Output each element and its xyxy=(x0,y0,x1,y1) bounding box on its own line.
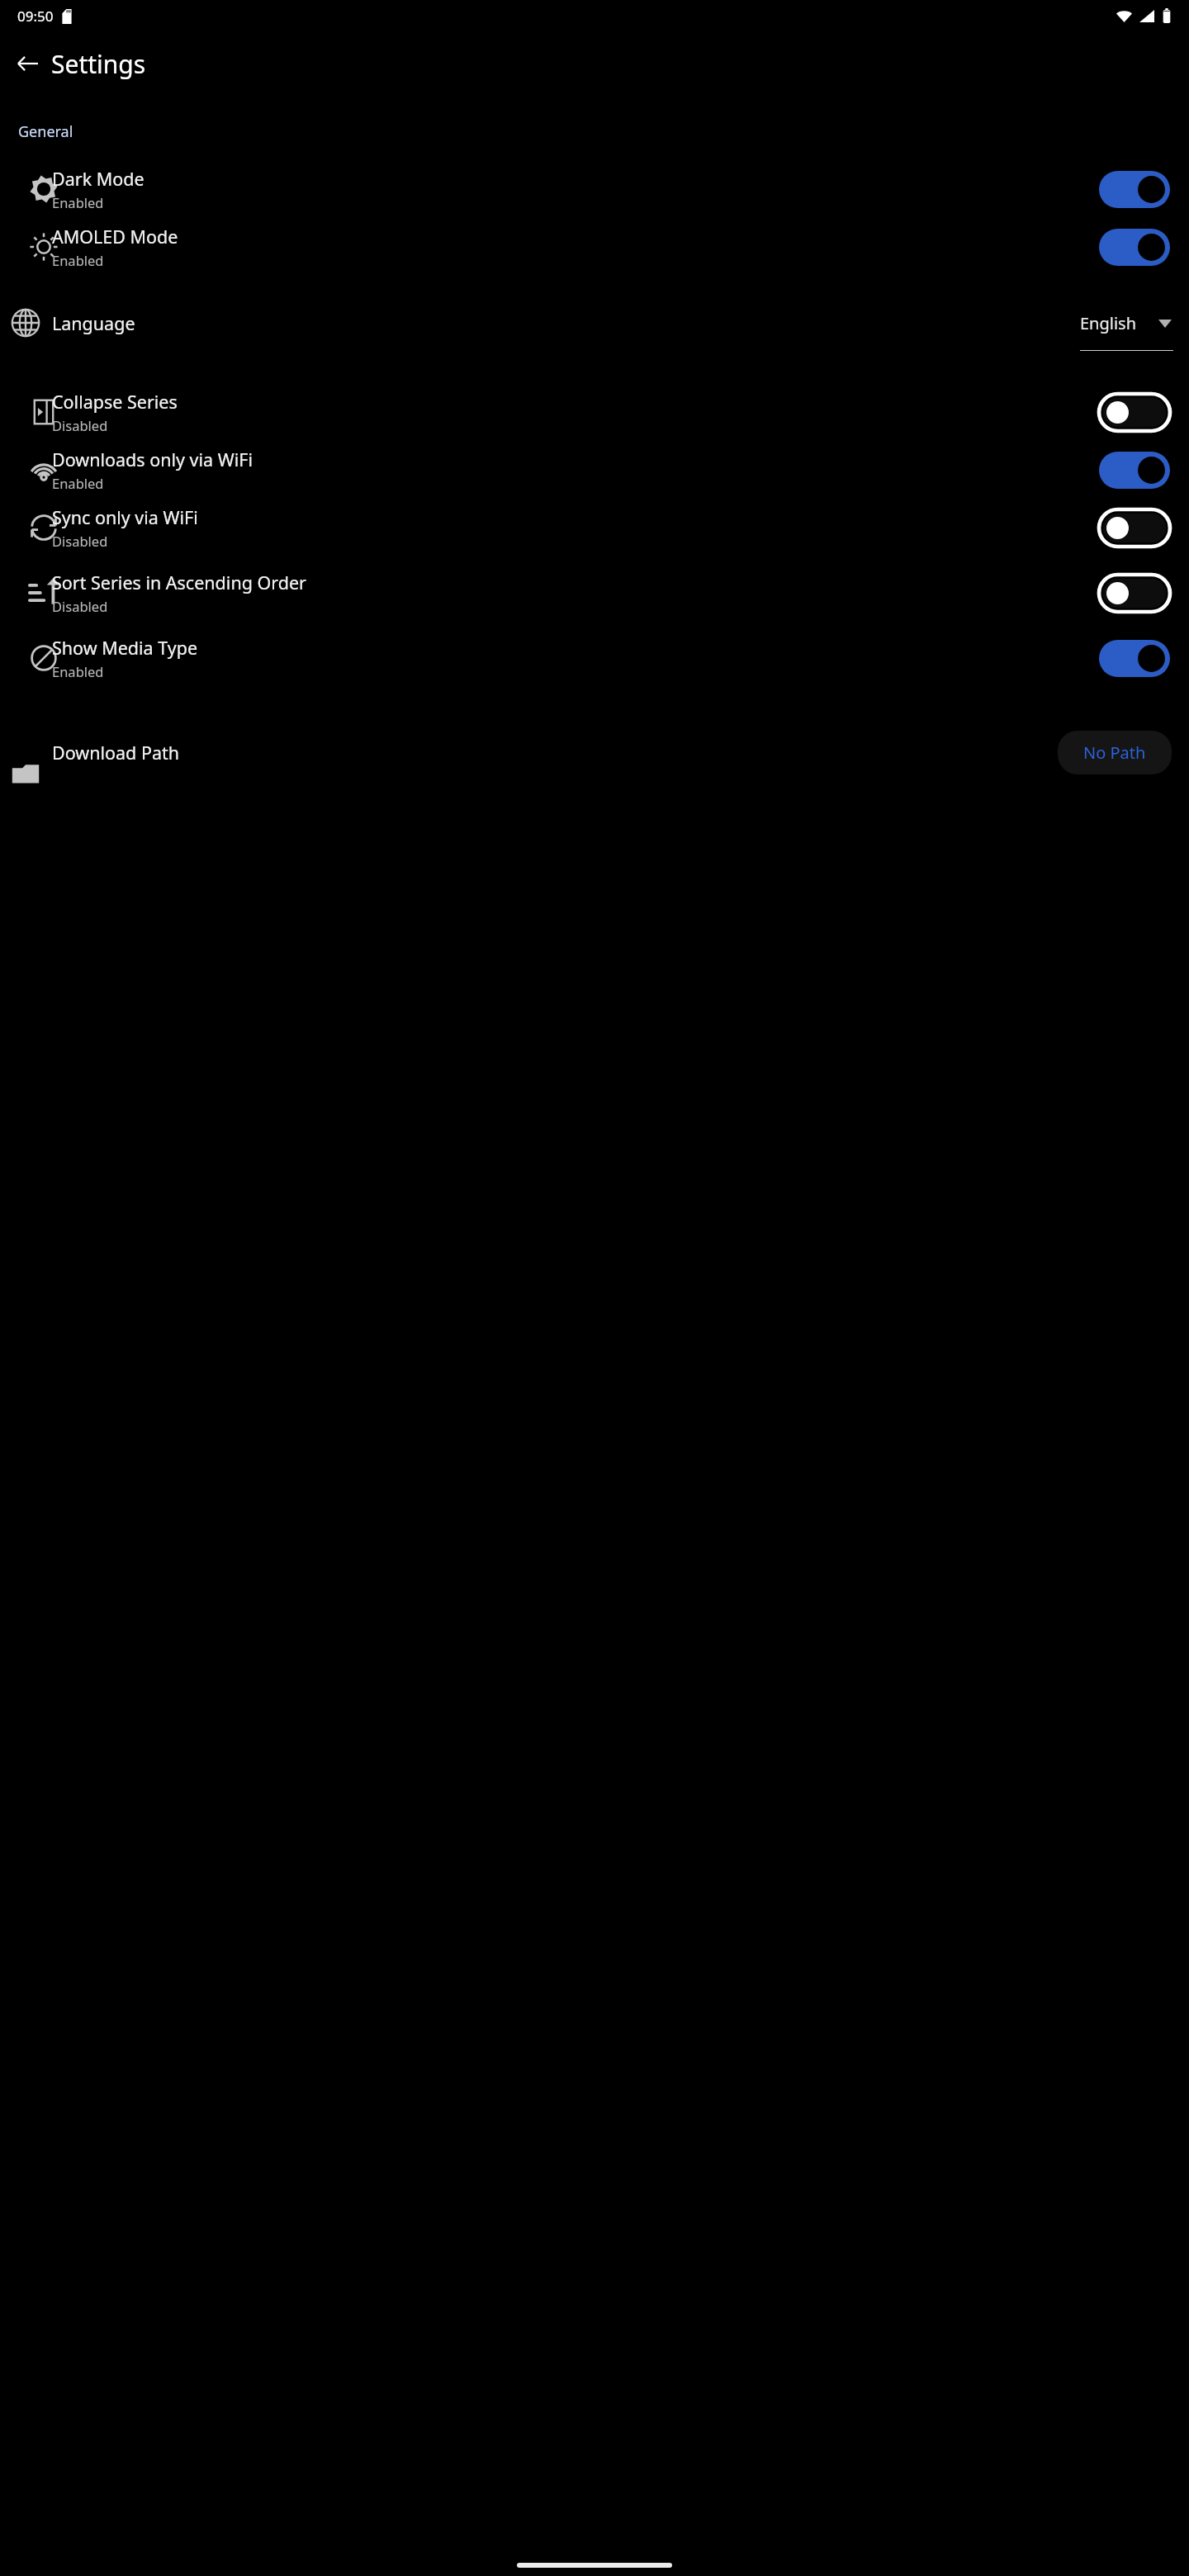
staticText: Dark Mode xyxy=(52,167,144,191)
staticText: Language xyxy=(52,311,135,335)
staticText: Enabled xyxy=(52,251,104,269)
button[interactable]: Show Media Type xyxy=(0,629,1189,687)
button[interactable]: AMOLED Mode xyxy=(0,218,1189,276)
button[interactable]: Language xyxy=(0,297,1189,348)
button[interactable]: Downloads only via WiFi toggle xyxy=(1099,452,1170,489)
staticText: Disabled xyxy=(52,416,108,434)
button[interactable]: Dark Mode toggle xyxy=(1099,171,1170,208)
staticText: Disabled xyxy=(52,532,108,550)
staticText: Collapse Series xyxy=(52,390,178,414)
button[interactable]: Download Path xyxy=(0,722,1189,783)
button[interactable]: Sort Series in Ascending Order toggle xyxy=(1099,575,1170,612)
button[interactable]: Sync only via WiFi toggle xyxy=(1099,509,1170,547)
staticText: 09:50 xyxy=(17,7,54,26)
staticText: General xyxy=(18,121,73,142)
staticText: English xyxy=(1080,312,1137,334)
button[interactable]: Downloads only via WiFi xyxy=(0,441,1189,499)
staticText: Disabled xyxy=(52,597,108,615)
staticText: Show Media Type xyxy=(52,636,198,660)
button[interactable]: Collapse Series toggle xyxy=(1099,394,1170,431)
button[interactable]: Collapse Series xyxy=(0,383,1189,441)
button[interactable]: Show Media Type toggle xyxy=(1099,640,1170,677)
staticText: No Path xyxy=(1083,741,1146,764)
staticText: Enabled xyxy=(52,474,104,492)
staticText: Sort Series in Ascending Order xyxy=(52,571,306,594)
staticText: Settings xyxy=(51,47,146,81)
staticText: Enabled xyxy=(52,193,104,211)
button[interactable]: Back xyxy=(5,40,51,87)
staticText: Sync only via WiFi xyxy=(52,505,198,529)
staticText: AMOLED Mode xyxy=(52,225,178,249)
button[interactable]: Dark Mode xyxy=(0,160,1189,218)
staticText: Download Path xyxy=(52,741,180,765)
button[interactable]: AMOLED Mode toggle xyxy=(1099,229,1170,266)
staticText: Downloads only via WiFi xyxy=(52,447,253,471)
button[interactable]: Sort Series in Ascending Order xyxy=(0,556,1189,629)
button[interactable]: No Path xyxy=(1058,731,1172,774)
button[interactable]: Sync only via WiFi xyxy=(0,499,1189,556)
staticText: Enabled xyxy=(52,662,104,680)
